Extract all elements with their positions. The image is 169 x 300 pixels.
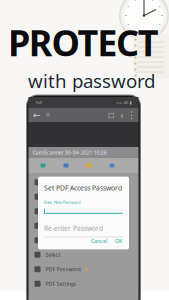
button[interactable]: Share	[28, 189, 138, 204]
staticText: Cancel	[91, 237, 107, 244]
button[interactable]: More options	[127, 108, 135, 121]
button[interactable]: Select	[28, 247, 138, 262]
button[interactable]: Save to Gallery	[28, 175, 138, 189]
button[interactable]: Cancel	[87, 237, 111, 244]
button[interactable]: Rename	[28, 204, 138, 218]
staticText: ⌗	[46, 112, 50, 118]
button[interactable]: Tool	[77, 158, 100, 173]
button[interactable]: PDF Settings	[28, 276, 138, 291]
button[interactable]: Back	[31, 108, 42, 121]
button[interactable]: Tool	[31, 158, 54, 173]
button[interactable]: Crop	[42, 108, 53, 121]
button[interactable]: PDF Password	[28, 262, 138, 276]
staticText: □	[108, 111, 114, 119]
staticText: ▫▫ 4G ▮	[116, 100, 131, 105]
staticText: ⋮	[127, 110, 136, 120]
staticText: Re-enter Password	[44, 224, 103, 233]
staticText: Save to Gallery	[45, 179, 81, 186]
button[interactable]: Tool	[54, 158, 77, 173]
staticText: CamScanner 30-04-2021 10.26	[32, 149, 106, 156]
staticText: ‹	[120, 109, 123, 121]
button[interactable]: OK	[111, 237, 126, 244]
staticText: Import Photos	[45, 237, 80, 244]
staticText: PDF Settings	[45, 280, 76, 287]
staticText: Enter New Password	[44, 199, 80, 205]
staticText: with password	[28, 68, 155, 93]
staticText: PROTECT	[8, 18, 159, 66]
button[interactable]: Share	[116, 108, 127, 121]
staticText: Collage	[45, 222, 62, 229]
button[interactable]: Collage	[28, 218, 138, 233]
staticText: Select	[45, 251, 60, 258]
staticText: 9:41	[35, 100, 42, 105]
button[interactable]: Tool	[100, 158, 123, 173]
button[interactable]: Import Photos	[28, 233, 138, 247]
button[interactable]: Copy	[105, 108, 116, 121]
staticText: Rename	[45, 208, 65, 215]
staticText: ←	[33, 110, 41, 120]
staticText: OK	[115, 237, 122, 244]
staticText: PDF Password	[45, 266, 80, 273]
staticText: Set PDF Access Password	[44, 184, 122, 192]
